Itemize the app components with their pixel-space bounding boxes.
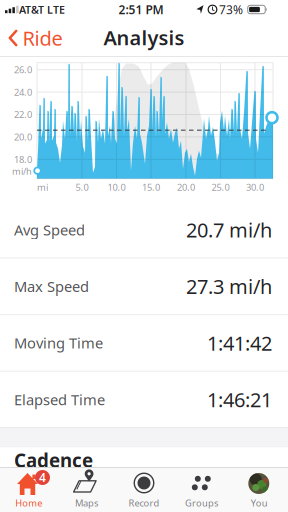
- button[interactable]: You — profile: [230, 467, 288, 512]
- staticText: 18.0: [14, 153, 32, 165]
- staticText: 27.3 mi/h: [186, 273, 272, 300]
- staticText: 20.7 mi/h: [186, 216, 272, 243]
- staticText: mi: [37, 181, 48, 193]
- staticText: 20.0: [14, 131, 32, 143]
- staticText: Avg Speed: [14, 220, 85, 239]
- staticText: 2:51 PM: [118, 1, 163, 17]
- staticText: 10.0: [107, 181, 125, 193]
- staticText: Record: [128, 497, 159, 509]
- staticText: 1:41:42: [207, 330, 272, 356]
- staticText: 24.0: [14, 86, 32, 98]
- staticText: 5.0: [75, 181, 88, 193]
- staticText: 30.0: [246, 181, 264, 193]
- staticText: 1:46:21: [207, 386, 272, 413]
- staticText: Max Speed: [14, 277, 89, 296]
- staticText: 73%: [219, 1, 243, 17]
- staticText: Home: [15, 497, 42, 509]
- staticText: 26.0: [14, 63, 32, 76]
- staticText: Groups: [185, 497, 218, 509]
- staticText: 20.0: [177, 181, 195, 193]
- button[interactable]: Home: [0, 467, 58, 512]
- button[interactable]: Ride: [0, 20, 72, 56]
- staticText: You: [251, 497, 268, 509]
- staticText: Moving Time: [14, 333, 103, 353]
- staticText: 25.0: [211, 181, 229, 193]
- button[interactable]: Maps: [58, 467, 115, 512]
- staticText: Analysis: [103, 24, 184, 51]
- staticText: AT&T LTE: [19, 2, 65, 17]
- button[interactable]: Groups: [173, 467, 230, 512]
- staticText: mi/h: [12, 165, 32, 177]
- staticText: 4: [39, 469, 46, 485]
- staticText: 22.0: [14, 108, 32, 121]
- staticText: Ride: [22, 25, 62, 51]
- staticText: Elapsed Time: [14, 390, 105, 409]
- button[interactable]: Record: [115, 467, 173, 512]
- staticText: Cadence: [14, 448, 93, 473]
- staticText: Maps: [75, 497, 98, 509]
- staticText: 15.0: [142, 181, 160, 193]
